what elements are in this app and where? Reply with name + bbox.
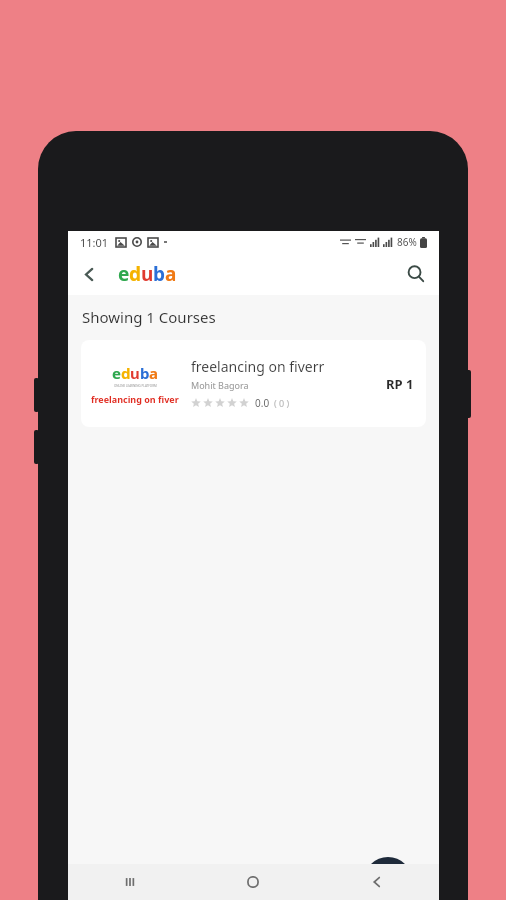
staticText: ONLINE LEARNING PLATFORM xyxy=(114,384,157,388)
button[interactable]: Recent apps xyxy=(68,864,191,900)
staticText: e xyxy=(112,363,121,383)
staticText: Mohit Bagora xyxy=(191,379,249,391)
staticText: d xyxy=(121,363,130,383)
staticText: 86% xyxy=(397,235,417,249)
button[interactable]: e xyxy=(118,261,176,287)
staticText: a xyxy=(149,363,158,383)
staticText: freelancing on fiverr xyxy=(191,357,325,376)
staticText: u xyxy=(141,261,153,287)
button[interactable]: Back xyxy=(68,253,110,295)
staticText: freelancing on fiver xyxy=(91,393,179,405)
button[interactable]: Filter xyxy=(364,857,412,900)
staticText: RP 1 xyxy=(386,375,414,393)
button[interactable]: Back xyxy=(315,864,439,900)
staticText: 0.0 xyxy=(255,396,270,410)
staticText: 11:01 xyxy=(80,235,109,250)
staticText: ( 0 ) xyxy=(274,397,290,409)
staticText: Showing 1 Courses xyxy=(82,307,216,327)
staticText: u xyxy=(130,363,140,383)
staticText: b xyxy=(153,261,165,287)
staticText: a xyxy=(165,261,176,287)
button[interactable]: Home xyxy=(191,864,315,900)
button[interactable]: e xyxy=(81,340,426,427)
staticText: d xyxy=(129,261,141,287)
button[interactable]: Search xyxy=(393,253,439,295)
staticText: b xyxy=(140,363,149,383)
staticText: e xyxy=(118,261,129,287)
